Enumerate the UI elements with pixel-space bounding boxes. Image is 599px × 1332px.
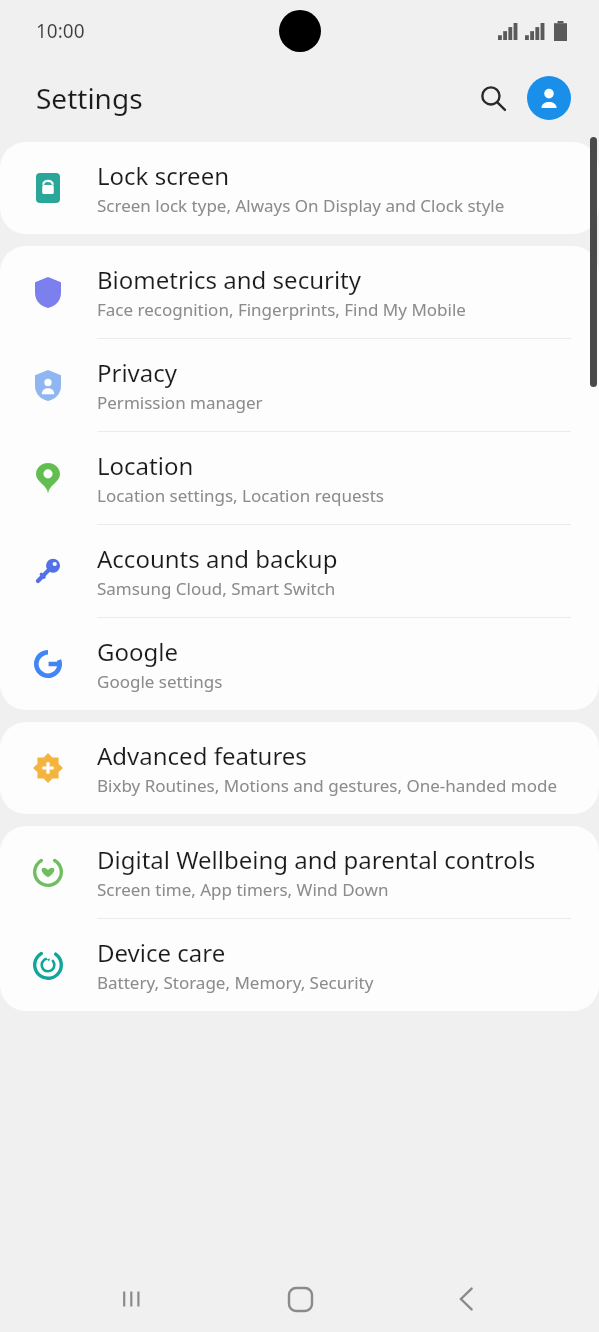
button[interactable]: Search	[469, 74, 517, 122]
staticText: Screen time, App timers, Wind Down	[97, 878, 389, 901]
staticText: Permission manager	[97, 391, 263, 414]
staticText: Biometrics and security	[97, 263, 361, 296]
button[interactable]: Accounts and backup	[0, 525, 599, 617]
button[interactable]: Recents	[100, 1266, 166, 1332]
staticText: 10:00	[36, 18, 85, 44]
staticText: Location	[97, 449, 194, 482]
button[interactable]: Digital Wellbeing and parental controls	[0, 826, 599, 918]
button[interactable]: Advanced features	[0, 722, 599, 814]
staticText: Digital Wellbeing and parental controls	[97, 843, 536, 876]
staticText: Settings	[36, 79, 143, 117]
button[interactable]: Back	[433, 1266, 499, 1332]
button[interactable]: Location	[0, 432, 599, 524]
button[interactable]: Biometrics and security	[0, 246, 599, 338]
staticText: Battery, Storage, Memory, Security	[97, 971, 374, 994]
button[interactable]: Privacy	[0, 339, 599, 431]
staticText: Google settings	[97, 670, 223, 693]
button[interactable]: Device care	[0, 919, 599, 1011]
staticText: Device care	[97, 936, 226, 969]
button[interactable]: Account	[527, 76, 571, 120]
button[interactable]: Google	[0, 618, 599, 710]
staticText: Face recognition, Fingerprints, Find My …	[97, 298, 466, 321]
staticText: Advanced features	[97, 739, 307, 772]
staticText: Lock screen	[97, 159, 230, 192]
staticText: Bixby Routines, Motions and gestures, On…	[97, 774, 557, 797]
button[interactable]: Lock screen	[0, 142, 599, 234]
staticText: Google	[97, 635, 178, 668]
button[interactable]: Home	[267, 1266, 333, 1332]
staticText: Screen lock type, Always On Display and …	[97, 194, 505, 217]
staticText: Samsung Cloud, Smart Switch	[97, 577, 336, 600]
staticText: Privacy	[97, 356, 178, 389]
staticText: Location settings, Location requests	[97, 484, 384, 507]
staticText: Accounts and backup	[97, 542, 338, 575]
